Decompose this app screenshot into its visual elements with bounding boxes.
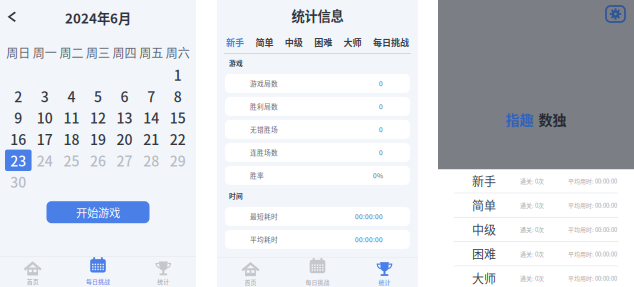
button[interactable]: 简单 [255,31,273,53]
staticText: 每日挑战 [305,278,329,286]
staticText: 简单 [255,35,273,48]
staticText: 27 [117,150,133,170]
staticText: 游戏局数 [250,79,278,88]
button[interactable]: 每日挑战 [373,31,409,53]
button[interactable]: 首页 [0,255,65,287]
button[interactable]: Settings [606,6,625,22]
staticText: 统计 [157,277,169,286]
staticText: 21 [143,129,159,149]
staticText: 平均用时: 00:00:00 [568,250,617,258]
staticText: 2 [14,86,22,106]
staticText: 0 [379,148,383,157]
staticText: 简单 [472,197,496,214]
staticText: 每日挑战 [86,277,110,286]
staticText: 平均用时: 00:00:00 [568,274,617,282]
button[interactable]: 首页 [217,256,284,287]
staticText: 1 [174,65,182,85]
staticText: 胜率 [250,171,264,180]
staticText: 0% [373,171,383,180]
staticText: 困难 [472,245,496,263]
button[interactable]: Back [2,6,22,27]
staticText: 无错胜场 [250,125,278,134]
staticText: 30 [10,172,26,192]
staticText: 指趣 [505,109,533,129]
staticText: 2024年6月 [65,8,131,27]
staticText: 平均用时: 00:00:00 [568,225,617,234]
staticText: 通关: 0次 [520,250,544,258]
staticText: 15 [170,107,186,128]
button[interactable]: 新手 [438,169,634,193]
button[interactable]: 统计 [351,256,418,287]
staticText: 周日 [6,44,30,61]
staticText: 最短耗时 [250,212,278,221]
staticText: 0 [379,79,383,88]
staticText: 困难 [314,35,332,48]
staticText: 胜利局数 [250,102,278,111]
staticText: 19 [90,129,106,149]
button[interactable]: 大师 [344,31,362,53]
staticText: 26 [90,150,106,170]
staticText: 通关: 0次 [520,274,544,282]
staticText: 中级 [472,221,496,238]
button[interactable]: 每日挑战 [284,256,351,287]
staticText: 14 [143,107,159,128]
button[interactable]: 开始游戏 [46,201,149,223]
button[interactable]: 统计 [131,255,196,287]
button[interactable]: 大师 [438,266,634,287]
staticText: 00:00:00 [355,235,383,244]
button[interactable]: 新手 [226,31,244,53]
staticText: 18 [63,129,79,149]
button[interactable]: 每日挑战 [65,255,131,287]
staticText: 6 [121,86,129,106]
button[interactable]: 中级 [438,218,634,241]
staticText: 周五 [139,44,163,61]
staticText: 周一 [33,44,57,61]
staticText: 0 [379,125,383,134]
staticText: 大师 [344,35,362,48]
button[interactable]: 简单 [438,194,634,217]
staticText: 通关: 0次 [520,201,544,209]
staticText: 5 [94,86,102,106]
staticText: 首页 [244,278,256,286]
staticText: 通关: 0次 [520,177,544,185]
staticText: 统计 [378,278,390,286]
staticText: 13 [117,107,133,128]
staticText: 4 [67,86,75,106]
staticText: 新手 [472,172,496,190]
staticText: 周二 [59,44,83,61]
staticText: 11 [63,107,79,128]
staticText: 统计信息 [291,6,343,25]
staticText: 28 [143,150,159,170]
staticText: 22 [170,129,186,149]
button[interactable]: 中级 [285,31,303,53]
staticText: 平均用时: 00:00:00 [568,201,617,209]
staticText: 通关: 0次 [520,225,544,234]
staticText: 17 [37,129,53,149]
staticText: 0 [379,102,383,111]
staticText: 连胜场数 [250,148,278,157]
staticText: 周六 [166,44,190,61]
staticText: 平均耗时 [250,235,278,244]
button[interactable]: 困难 [314,31,332,53]
staticText: 平均用时: 00:00:00 [568,177,617,185]
staticText: 10 [37,107,53,128]
staticText: 新手 [226,35,244,48]
staticText: 时间 [229,191,243,201]
staticText: 16 [10,129,26,149]
staticText: 周四 [113,44,137,61]
staticText: 游戏 [229,58,243,68]
staticText: 每日挑战 [373,35,409,48]
staticText: 7 [147,86,155,106]
staticText: 00:00:00 [355,212,383,221]
button[interactable]: 困难 [438,242,634,266]
